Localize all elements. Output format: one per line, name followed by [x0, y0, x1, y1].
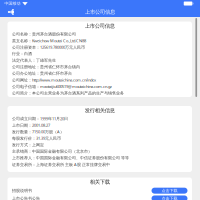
button[interactable]: Share	[4, 7, 18, 17]
staticText: 公司电子信箱：maotaijiu600519@moutaichina.com.c…	[12, 84, 112, 89]
staticText: 上市日期：2001-08-27	[12, 122, 50, 128]
staticText: 公司成立日期：1999年11月20日	[12, 116, 68, 121]
staticText: 招股说明书	[12, 188, 32, 193]
staticText: 每股发行价：31.39元人民币	[12, 136, 61, 141]
staticText: 证券交易所：上海证券交易所 主板 A股 正常挂牌交易中	[12, 162, 110, 167]
staticText: 发行相关信息	[85, 107, 115, 114]
staticText: 主承销商：中国国际金融有限公司（北京市）	[12, 149, 92, 154]
button[interactable]: 点击下载	[151, 188, 187, 194]
staticText: 点击下载	[161, 196, 177, 200]
staticText: 中国移动	[4, 1, 20, 6]
staticText: 公司名称：贵州茅台酒股份有限公司	[12, 32, 76, 37]
staticText: 上市推荐人：中国国际金融有限公司、中信证券股份有限公司 等等	[12, 155, 129, 160]
button[interactable]: 点击下载	[151, 195, 187, 200]
staticText: 公司办公地址：贵州省仁怀市茅台	[12, 71, 72, 76]
staticText: 发行数量：7150.00万股（A）	[12, 129, 64, 134]
staticText: 相关下载	[90, 179, 110, 185]
staticText: 发行方式：上网定	[12, 142, 44, 147]
staticText: 点击下载	[161, 188, 177, 193]
staticText: 上市公告书公告	[12, 196, 40, 200]
staticText: 英文名称：Kweichow Moutai Co.,Ltd.CN88	[12, 38, 86, 43]
staticText: 法定代表人：丁雄军先生	[12, 58, 56, 63]
staticText: 上市公司信息	[85, 9, 115, 15]
staticText: 公司注册地址：贵州省仁怀市茅台镇内	[12, 64, 80, 69]
staticText: 公司网址：http://www.moutaichina.com.cn/index	[12, 77, 96, 83]
staticText: 上市公司信息	[85, 23, 115, 29]
staticText: 行业：白酒	[12, 51, 32, 56]
staticText: 公司简介：本公司主营业务为茅台酒系列产品的生产与销售业务	[12, 91, 124, 95]
staticText: 公司注册资本：125619.780000万元人民币	[12, 45, 85, 50]
